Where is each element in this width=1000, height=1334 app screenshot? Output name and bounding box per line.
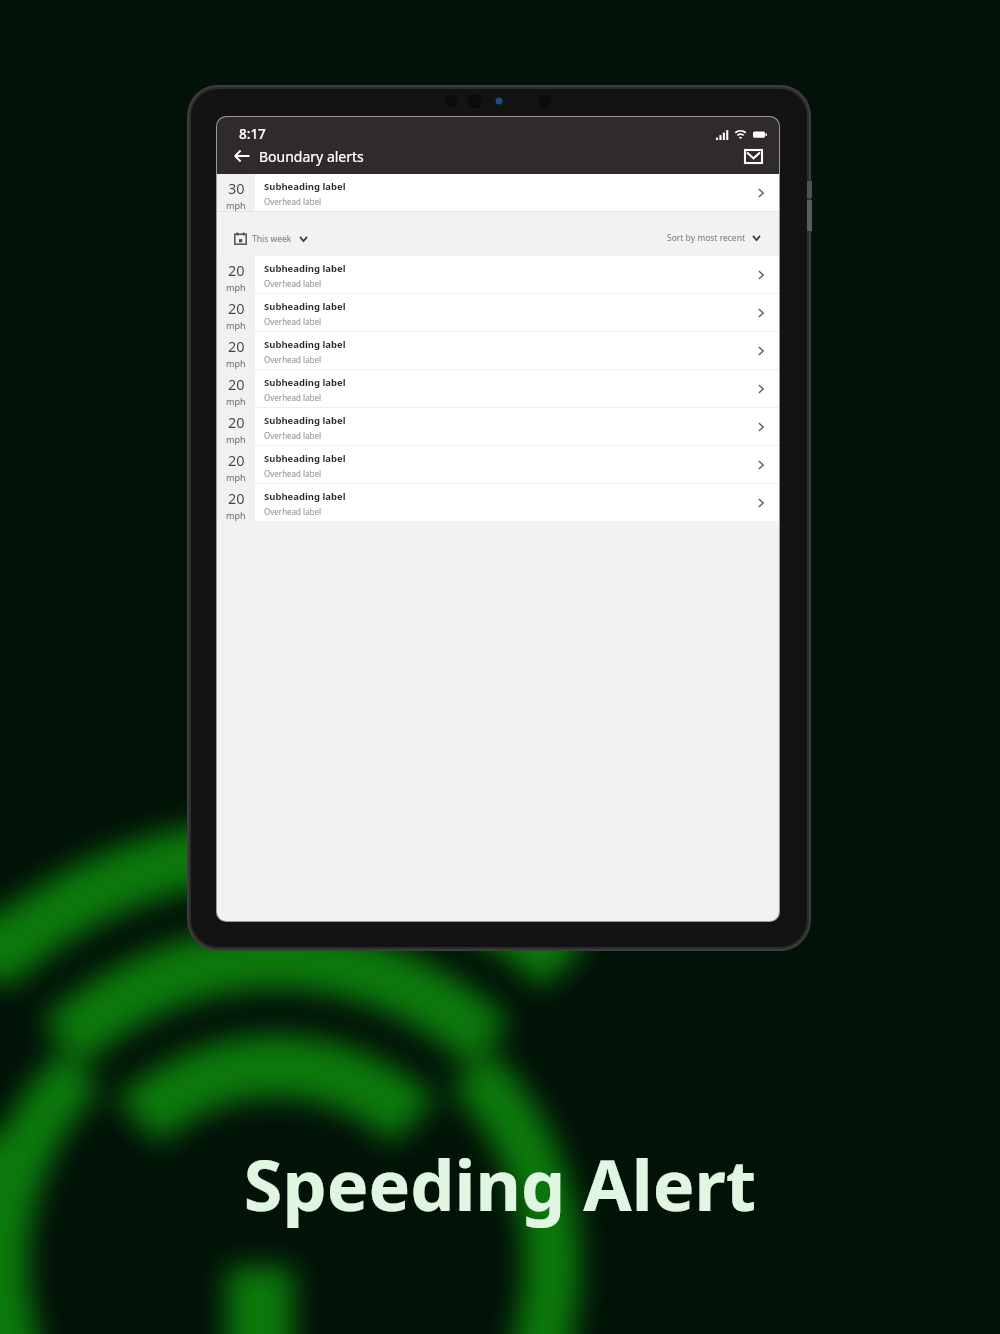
- staticText: Subheading label: [264, 452, 346, 465]
- staticText: mph: [226, 357, 246, 369]
- staticText: 20: [228, 488, 245, 508]
- staticText: Overhead label: [264, 430, 322, 441]
- staticText: mph: [226, 281, 246, 293]
- staticText: 30: [228, 178, 245, 198]
- staticText: mph: [226, 395, 246, 407]
- staticText: Overhead label: [264, 392, 322, 403]
- button[interactable]: 30: [217, 174, 779, 211]
- staticText: Overhead label: [264, 354, 322, 365]
- staticText: Subheading label: [264, 338, 346, 351]
- staticText: 20: [228, 260, 245, 280]
- staticText: Subheading label: [264, 262, 346, 275]
- staticText: 20: [228, 298, 245, 318]
- staticText: 20: [228, 336, 245, 356]
- staticText: Overhead label: [264, 278, 322, 289]
- staticText: mph: [226, 319, 246, 331]
- staticText: mph: [226, 199, 246, 211]
- staticText: Sort by most recent: [667, 232, 745, 244]
- staticText: 20: [228, 374, 245, 394]
- button[interactable]: 20: [217, 408, 779, 445]
- staticText: mph: [226, 471, 246, 483]
- button[interactable]: 20: [217, 484, 779, 521]
- staticText: Subheading label: [264, 376, 346, 389]
- staticText: Subheading label: [264, 414, 346, 427]
- staticText: This week: [252, 233, 292, 245]
- button[interactable]: 20: [217, 370, 779, 407]
- staticText: Speeding Alert: [0, 1136, 1000, 1231]
- staticText: Overhead label: [264, 468, 322, 479]
- button[interactable]: 20: [217, 332, 779, 369]
- button[interactable]: 20: [217, 294, 779, 331]
- staticText: Overhead label: [264, 196, 322, 207]
- staticText: Overhead label: [264, 316, 322, 327]
- staticText: 20: [228, 412, 245, 432]
- button[interactable]: Back: [231, 145, 253, 167]
- staticText: Subheading label: [264, 490, 346, 503]
- button[interactable]: This week: [234, 232, 308, 245]
- staticText: mph: [226, 433, 246, 445]
- staticText: mph: [226, 509, 246, 521]
- staticText: Boundary alerts: [259, 147, 364, 166]
- button[interactable]: 20: [217, 256, 779, 293]
- button[interactable]: Messages: [740, 143, 766, 169]
- staticText: Overhead label: [264, 506, 322, 517]
- staticText: 20: [228, 450, 245, 470]
- button[interactable]: Sort by most recent: [667, 232, 761, 244]
- staticText: 8:17: [239, 125, 266, 143]
- staticText: Subheading label: [264, 300, 346, 313]
- staticText: Subheading label: [264, 180, 346, 193]
- button[interactable]: 20: [217, 446, 779, 483]
